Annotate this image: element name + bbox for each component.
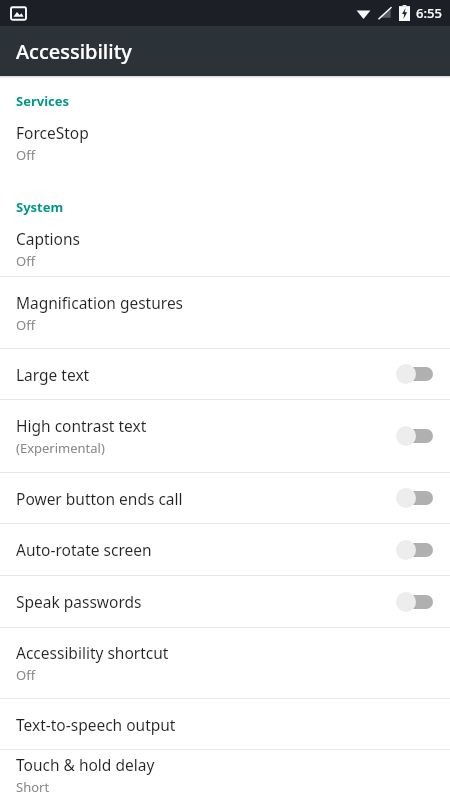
- button[interactable]: Captions: [0, 222, 450, 276]
- button[interactable]: Auto-rotate screen: [0, 524, 450, 575]
- button[interactable]: Speak passwords: [0, 576, 450, 627]
- button[interactable]: High contrast text: [0, 400, 450, 472]
- staticText: Large text: [16, 364, 90, 385]
- button[interactable]: Large text: [0, 349, 450, 399]
- staticText: System: [16, 198, 64, 216]
- staticText: Accessibility: [16, 38, 132, 65]
- staticText: Speak passwords: [16, 591, 142, 612]
- button[interactable]: Touch & hold delay: [0, 750, 450, 800]
- staticText: Text-to-speech output: [16, 714, 176, 735]
- staticText: Off: [16, 316, 36, 334]
- staticText: Accessibility shortcut: [16, 642, 169, 663]
- staticText: ForceStop: [16, 122, 89, 143]
- staticText: Off: [16, 146, 36, 164]
- staticText: Magnification gestures: [16, 292, 184, 313]
- staticText: Services: [16, 92, 70, 110]
- staticText: (Experimental): [16, 439, 105, 457]
- staticText: Off: [16, 666, 36, 684]
- staticText: 6:55: [416, 4, 442, 22]
- button[interactable]: Magnification gestures: [0, 277, 450, 348]
- button[interactable]: ForceStop: [0, 116, 450, 170]
- button[interactable]: Accessibility shortcut: [0, 628, 450, 698]
- staticText: Short: [16, 778, 50, 796]
- staticText: Touch & hold delay: [16, 754, 155, 775]
- staticText: Auto-rotate screen: [16, 539, 152, 560]
- button[interactable]: Text-to-speech output: [0, 699, 450, 749]
- button[interactable]: Power button ends call: [0, 473, 450, 523]
- staticText: Power button ends call: [16, 488, 183, 509]
- staticText: Off: [16, 252, 36, 270]
- staticText: High contrast text: [16, 415, 147, 436]
- staticText: Captions: [16, 228, 80, 249]
